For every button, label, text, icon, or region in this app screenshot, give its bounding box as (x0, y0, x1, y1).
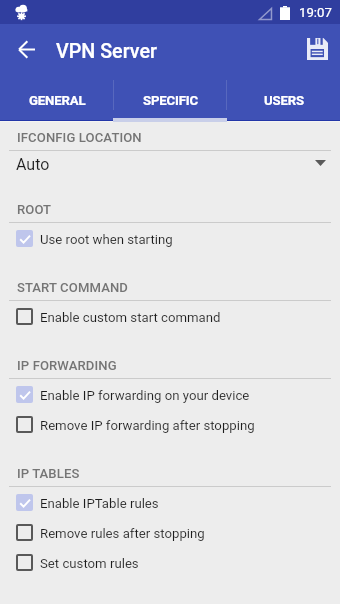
button[interactable]: Set custom rules (0, 547, 340, 577)
staticText: USERS (264, 93, 304, 108)
button[interactable]: Enable IPTable rules (0, 487, 340, 517)
button[interactable]: Auto (0, 151, 340, 175)
button[interactable]: Navigate up (10, 33, 42, 65)
staticText: Set custom rules (40, 556, 139, 571)
button[interactable]: USERS (227, 70, 340, 122)
staticText: ROOT (17, 202, 52, 217)
staticText: GENERAL (29, 93, 86, 108)
button[interactable]: SPECIFIC (114, 70, 227, 122)
staticText: 19:07 (299, 5, 332, 20)
staticText: IP TABLES (17, 466, 80, 481)
staticText: SPECIFIC (143, 93, 199, 108)
staticText: Use root when starting (40, 232, 173, 247)
button[interactable]: Remove rules after stopping (0, 517, 340, 547)
staticText: IFCONFIG LOCATION (17, 130, 142, 145)
button[interactable]: Use root when starting (0, 223, 340, 253)
staticText: IP FORWARDING (17, 358, 117, 373)
staticText: VPN Server (56, 40, 157, 63)
staticText: Auto (16, 155, 50, 174)
staticText: Remove IP forwarding after stopping (40, 418, 255, 433)
button[interactable]: Enable IP forwarding on your device (0, 379, 340, 409)
button[interactable]: GENERAL (0, 70, 114, 122)
button[interactable]: Remove IP forwarding after stopping (0, 409, 340, 439)
button[interactable]: Enable custom start command (0, 301, 340, 331)
button[interactable]: Save (300, 32, 334, 66)
staticText: START COMMAND (17, 280, 128, 295)
staticText: Enable IP forwarding on your device (40, 388, 250, 403)
staticText: Remove rules after stopping (40, 526, 205, 541)
staticText: Enable IPTable rules (40, 496, 159, 511)
staticText: Enable custom start command (40, 310, 221, 325)
